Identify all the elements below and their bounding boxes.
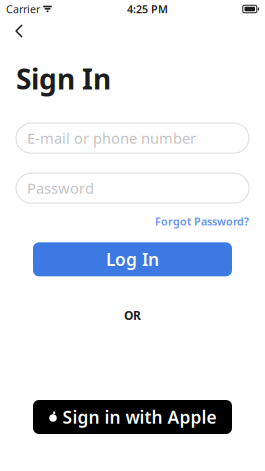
staticText: Carrier [6, 2, 40, 16]
staticText: Password [27, 178, 94, 198]
staticText: Sign In [16, 60, 111, 97]
staticText: Sign in with Apple [62, 405, 216, 428]
staticText: OR [124, 307, 141, 323]
button[interactable]: Sign in with Apple [33, 400, 232, 434]
staticText: 4:25 PM [127, 2, 168, 16]
button[interactable]: Log In [33, 242, 232, 276]
staticText: Log In [106, 248, 159, 271]
staticText: E-mail or phone number [27, 128, 196, 148]
button[interactable]: Back [4, 18, 34, 44]
staticText: Forgot Password? [155, 214, 249, 228]
button[interactable]: Forgot Password? [155, 214, 249, 228]
